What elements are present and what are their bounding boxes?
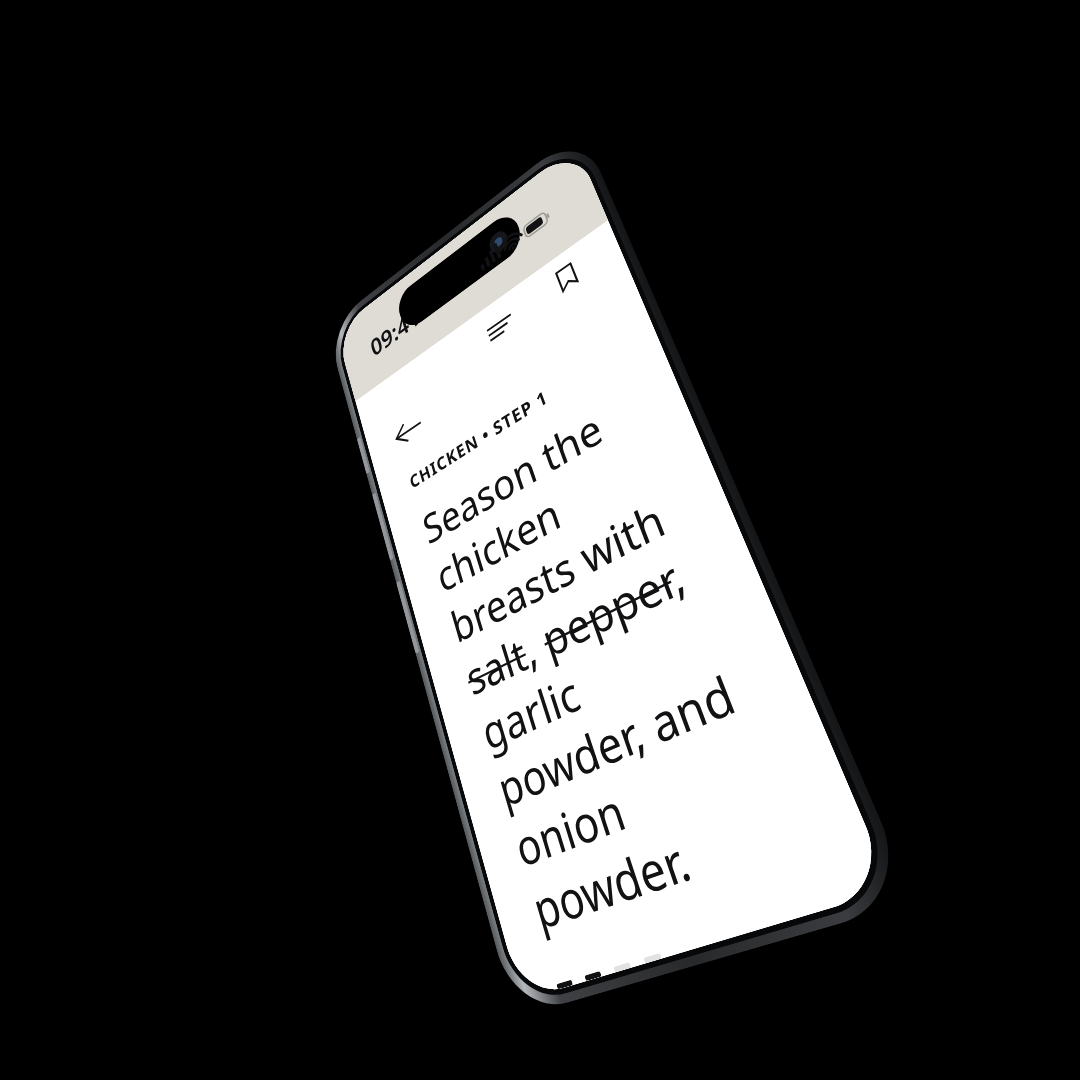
staticText: Season the chicken breasts with salt, pe…: [417, 375, 821, 945]
staticText: CHICKEN • STEP 1: [407, 384, 551, 494]
button[interactable]: CHICKEN • STEP 1: [407, 339, 842, 990]
button[interactable]: Back: [389, 405, 427, 457]
staticText: 09:41: [367, 300, 423, 363]
button[interactable]: Bookmark recipe: [546, 252, 588, 302]
button[interactable]: Steps overview: [482, 303, 520, 352]
